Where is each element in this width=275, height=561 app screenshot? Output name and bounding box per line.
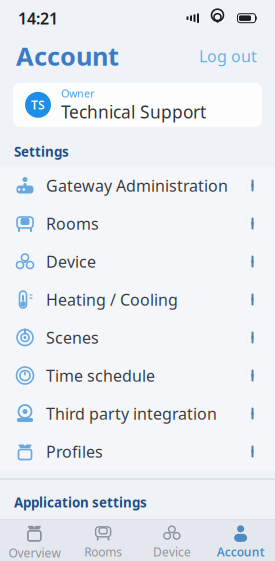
button[interactable]: Overview [0, 521, 69, 561]
staticText: Log out [199, 45, 257, 67]
button[interactable]: Device [0, 242, 275, 280]
staticText: Application settings [14, 493, 147, 511]
staticText: Device [153, 544, 191, 560]
staticText: Scenes [46, 327, 99, 348]
button[interactable]: Heating / Cooling [0, 280, 275, 318]
staticText: 14:21 [18, 7, 58, 29]
button[interactable]: Time schedule [0, 356, 275, 394]
button[interactable]: Device [137, 521, 206, 561]
button[interactable]: Rooms [0, 204, 275, 242]
button[interactable]: Profiles [0, 432, 275, 470]
button[interactable]: Rooms [69, 521, 138, 561]
staticText: Third party integration [46, 403, 217, 424]
staticText: TS [31, 97, 45, 113]
staticText: Heating / Cooling [46, 289, 178, 310]
staticText: Rooms [46, 213, 99, 234]
staticText: Settings [14, 143, 69, 160]
staticText: Account [16, 39, 119, 73]
button[interactable]: Third party integration [0, 394, 275, 432]
staticText: Account [217, 544, 265, 560]
staticText: Device [46, 251, 96, 272]
button[interactable]: Account [206, 521, 275, 561]
staticText: Rooms [84, 544, 122, 560]
staticText: Time schedule [46, 365, 155, 386]
staticText: Technical Support [61, 100, 206, 123]
button[interactable]: Scenes [0, 318, 275, 356]
staticText: Owner [61, 86, 94, 100]
button[interactable]: Log out [197, 41, 259, 71]
button[interactable]: Gateway Administration [0, 166, 275, 204]
staticText: Gateway Administration [46, 175, 228, 196]
button[interactable]: TS [13, 83, 262, 127]
staticText: Profiles [46, 441, 103, 462]
staticText: Overview [8, 545, 60, 561]
